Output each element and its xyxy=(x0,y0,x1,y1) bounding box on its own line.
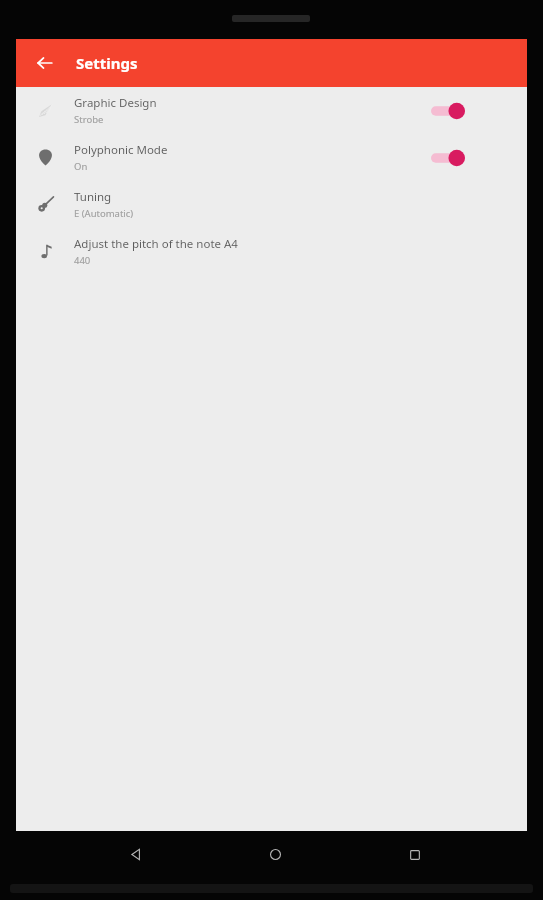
button[interactable]: Adjust the pitch of the note A4 xyxy=(16,228,527,275)
button[interactable]: Home xyxy=(250,831,300,878)
button[interactable]: Graphic Design toggle xyxy=(404,87,484,134)
button[interactable]: Recent apps xyxy=(390,831,440,878)
staticText: Graphic Design xyxy=(74,95,157,111)
staticText: Settings xyxy=(76,53,138,73)
button[interactable]: Back xyxy=(26,44,64,82)
staticText: Tuning xyxy=(74,189,112,205)
button[interactable]: Polyphonic Mode toggle xyxy=(404,134,484,181)
staticText: E (Automatic) xyxy=(74,207,134,220)
staticText: Polyphonic Mode xyxy=(74,142,168,158)
button[interactable]: Tuning xyxy=(16,181,527,228)
staticText: 440 xyxy=(74,254,91,267)
staticText: Strobe xyxy=(74,113,104,126)
staticText: Adjust the pitch of the note A4 xyxy=(74,236,238,252)
button[interactable]: Polyphonic Mode xyxy=(16,134,527,181)
staticText: On xyxy=(74,160,88,173)
button[interactable]: Graphic Design xyxy=(16,87,527,134)
button[interactable]: Back xyxy=(110,831,160,878)
